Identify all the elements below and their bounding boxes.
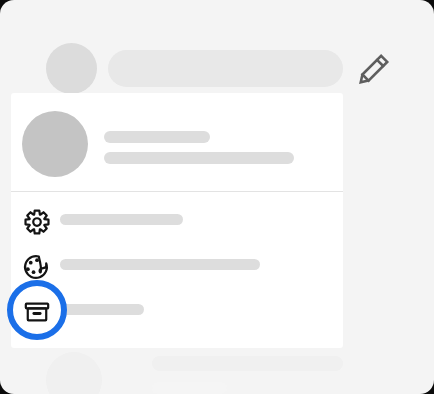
button[interactable]: Theme [11, 245, 343, 285]
button[interactable]: Archive [11, 290, 343, 330]
button[interactable]: Settings [11, 200, 343, 240]
button[interactable]: Edit [352, 44, 398, 90]
button[interactable]: Account [46, 43, 97, 94]
button[interactable]: Profile [11, 93, 343, 191]
